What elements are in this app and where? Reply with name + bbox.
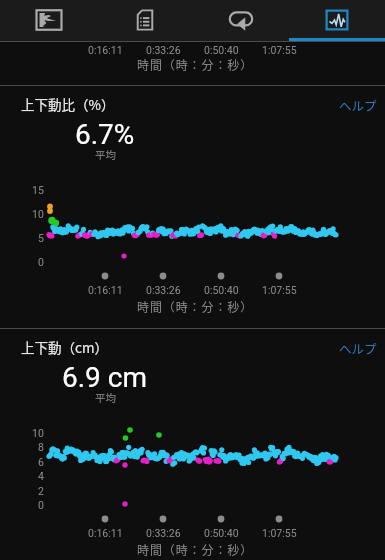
- button[interactable]: Map: [0, 0, 97, 41]
- staticText: 6.9 cm: [62, 361, 148, 394]
- staticText: 0:50:40: [204, 527, 239, 539]
- staticText: 0:50:40: [204, 44, 239, 56]
- staticText: 2: [38, 485, 44, 497]
- staticText: 6.7%: [75, 118, 135, 151]
- staticText: ヘルプ: [339, 96, 377, 114]
- staticText: 0:33:26: [146, 284, 181, 296]
- staticText: 1:07:55: [262, 284, 297, 296]
- staticText: 0:16:11: [88, 284, 123, 296]
- staticText: 10: [32, 427, 44, 439]
- staticText: 平均: [95, 390, 116, 405]
- staticText: 1:07:55: [262, 44, 297, 56]
- staticText: 上下動（cm）: [21, 337, 108, 355]
- staticText: 上下動比（%）: [21, 94, 115, 112]
- staticText: 8: [38, 441, 44, 453]
- staticText: 0:33:26: [146, 527, 181, 539]
- staticText: 15: [32, 184, 44, 196]
- button[interactable]: ヘルプ: [339, 339, 377, 357]
- staticText: 0:16:11: [88, 527, 123, 539]
- staticText: 0:50:40: [204, 284, 239, 296]
- button[interactable]: ヘルプ: [339, 96, 377, 114]
- button[interactable]: 上下動比（%）: [21, 94, 115, 112]
- button[interactable]: 上下動（cm）: [21, 337, 108, 355]
- staticText: 時間（時：分：秒）: [137, 298, 254, 315]
- staticText: 10: [32, 208, 44, 220]
- staticText: 6: [38, 456, 44, 468]
- staticText: 時間（時：分：秒）: [137, 541, 254, 558]
- staticText: 0: [38, 256, 44, 268]
- button[interactable]: Notes: [97, 0, 193, 41]
- staticText: 1:07:55: [262, 527, 297, 539]
- staticText: 5: [38, 232, 44, 244]
- staticText: 時間（時：分：秒）: [137, 56, 254, 73]
- staticText: 0: [38, 499, 44, 511]
- button[interactable]: Loop: [193, 0, 289, 41]
- staticText: 平均: [95, 147, 116, 162]
- staticText: 0:16:11: [88, 44, 123, 56]
- staticText: 0:33:26: [146, 44, 181, 56]
- button[interactable]: Charts: [289, 0, 385, 41]
- staticText: 4: [38, 470, 44, 482]
- staticText: ヘルプ: [339, 339, 377, 357]
